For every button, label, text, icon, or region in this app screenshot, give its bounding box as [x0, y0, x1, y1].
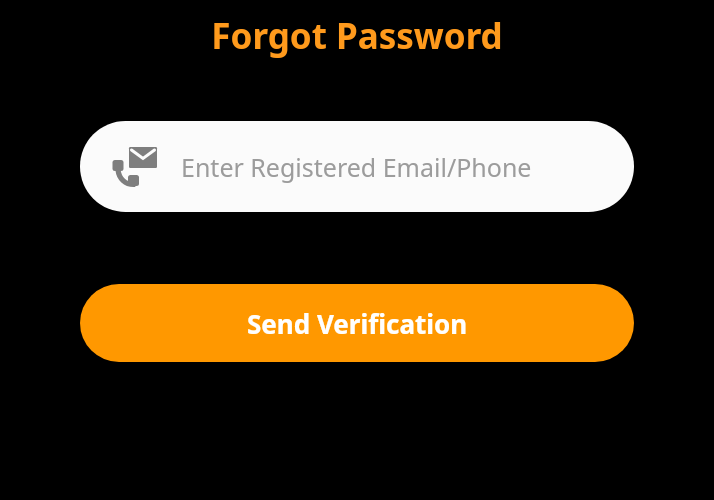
staticText: Enter Registered Email/Phone — [181, 150, 532, 184]
staticText: Forgot Password — [0, 12, 714, 60]
other: Email or phone — [111, 143, 159, 191]
button[interactable]: Send Verification — [80, 284, 634, 362]
button[interactable]: Email or phone — [80, 121, 634, 212]
staticText: Send Verification — [247, 306, 468, 341]
